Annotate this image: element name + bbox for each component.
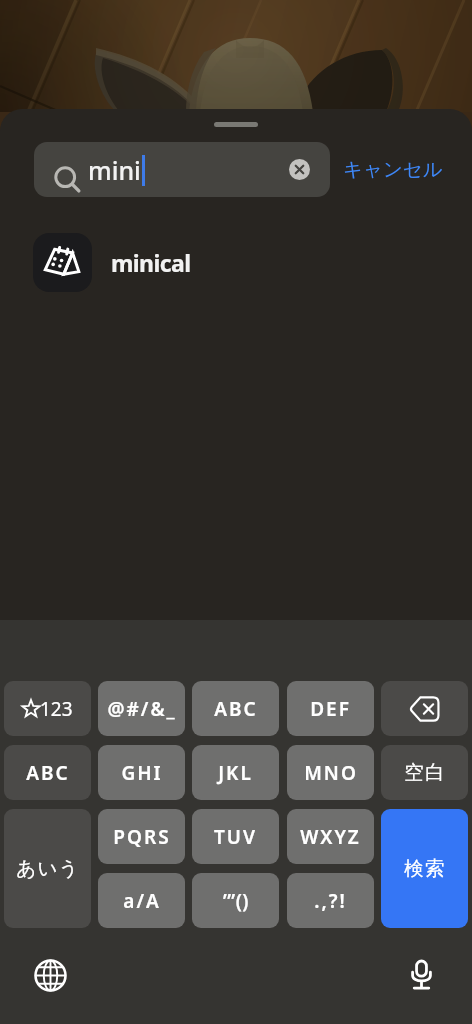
button[interactable]: 検索: [381, 809, 468, 928]
button[interactable]: JKL: [192, 745, 279, 800]
staticText: キャンセル: [343, 157, 443, 182]
staticText: .,?!: [314, 888, 347, 914]
button[interactable]: PQRS: [98, 809, 185, 864]
button[interactable]: DEF: [287, 681, 374, 736]
staticText: ABC: [214, 696, 258, 722]
button[interactable]: @#/&_: [98, 681, 185, 736]
staticText: WXYZ: [300, 824, 361, 850]
button[interactable]: 123: [4, 681, 91, 736]
button[interactable]: MNO: [287, 745, 374, 800]
staticText: DEF: [310, 696, 351, 722]
staticText: minical: [111, 247, 191, 278]
staticText: JKL: [218, 760, 253, 786]
button[interactable]: あいう: [4, 809, 91, 928]
button[interactable]: ABC: [4, 745, 91, 800]
staticText: 123: [40, 696, 73, 722]
staticText: TUV: [214, 824, 257, 850]
staticText: ’”(): [223, 888, 249, 914]
button[interactable]: キャンセル: [340, 149, 446, 190]
button[interactable]: a/A: [98, 873, 185, 928]
staticText: PQRS: [113, 824, 171, 850]
button[interactable]: Clear text: [289, 159, 310, 180]
button[interactable]: .,?!: [287, 873, 374, 928]
button[interactable]: Voice input: [401, 955, 441, 995]
button[interactable]: Change keyboard: [30, 955, 70, 995]
staticText: 検索: [404, 856, 446, 881]
button[interactable]: mini: [34, 142, 330, 197]
staticText: 空白: [404, 760, 446, 785]
staticText: @#/&_: [107, 696, 177, 722]
button[interactable]: minical: [0, 223, 472, 301]
button[interactable]: ABC: [192, 681, 279, 736]
staticText: MNO: [304, 760, 358, 786]
button[interactable]: ’”(): [192, 873, 279, 928]
staticText: mini: [88, 153, 141, 187]
staticText: GHI: [121, 760, 163, 786]
staticText: あいう: [16, 856, 80, 881]
button[interactable]: WXYZ: [287, 809, 374, 864]
button[interactable]: TUV: [192, 809, 279, 864]
staticText: ABC: [26, 760, 70, 786]
button[interactable]: Backspace: [381, 681, 468, 736]
staticText: a/A: [123, 888, 161, 914]
button[interactable]: GHI: [98, 745, 185, 800]
button[interactable]: 空白: [381, 745, 468, 800]
